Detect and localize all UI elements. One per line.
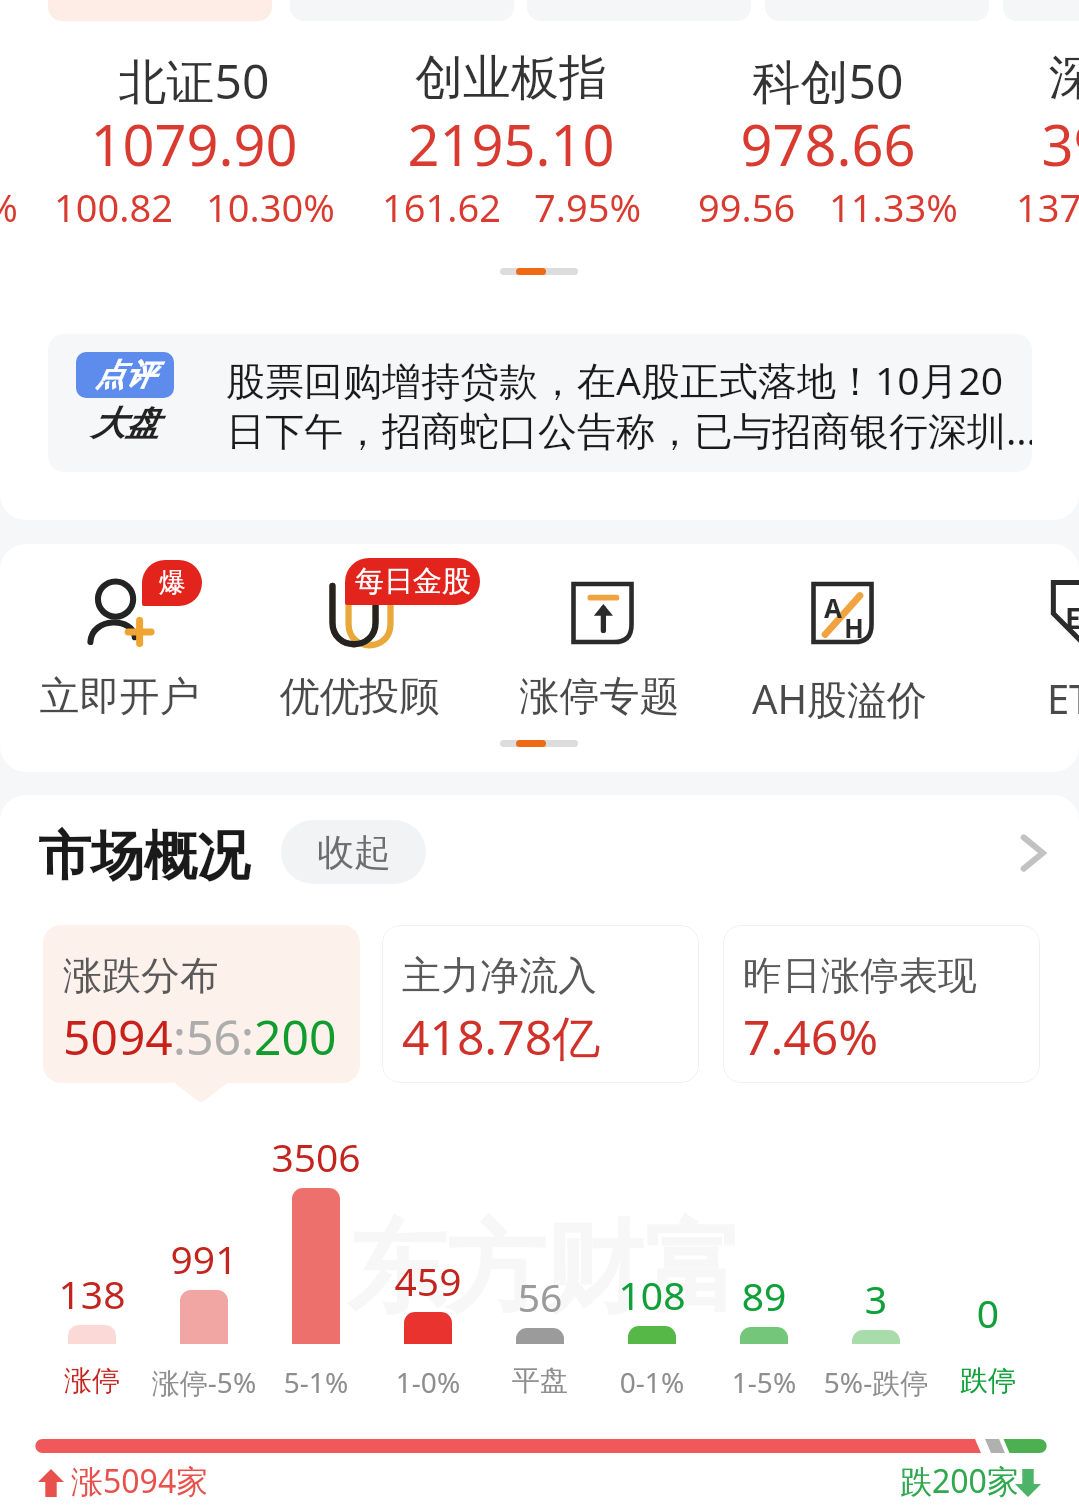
staticText: 56: [186, 1004, 241, 1069]
staticText: 涨停专题: [480, 671, 719, 721]
staticText: :: [173, 1004, 186, 1069]
button[interactable]: 深证成指: [987, 46, 1079, 246]
staticText: 11.33%: [829, 181, 958, 233]
staticText: 5-1%: [256, 1363, 376, 1401]
staticText: 459: [368, 1254, 488, 1307]
button[interactable]: 上证指数: [0, 46, 35, 246]
staticText: 优优投顾: [240, 671, 479, 721]
staticText: 1-5%: [704, 1363, 824, 1401]
staticText: 137.52: [1016, 181, 1079, 233]
staticText: 涨停: [32, 1363, 152, 1398]
staticText: 市场概况: [38, 823, 250, 890]
staticText: 跌200家: [900, 1459, 1019, 1503]
staticText: AH股溢价: [720, 671, 959, 726]
button[interactable]: 主力净流入: [382, 925, 699, 1083]
staticText: 3506: [256, 1130, 376, 1183]
staticText: 创业板指: [353, 48, 669, 108]
staticText: 北证50: [36, 48, 352, 114]
button[interactable]: 涨停专题: [480, 557, 719, 737]
staticText: 56: [480, 1270, 600, 1323]
staticText: A: [824, 590, 842, 625]
staticText: 0: [928, 1286, 1048, 1339]
staticText: 138: [32, 1267, 152, 1320]
staticText: 跌停: [928, 1363, 1048, 1398]
staticText: 7.46%: [743, 1004, 879, 1069]
staticText: 10.30%: [206, 181, 335, 233]
staticText: 1079.90: [36, 106, 352, 182]
staticText: 涨停-5%: [144, 1363, 264, 1401]
staticText: 991: [144, 1232, 264, 1285]
staticText: 东方财富: [347, 1207, 743, 1332]
staticText: ET: [1065, 599, 1079, 637]
staticText: 161.62: [382, 181, 501, 233]
staticText: 股票回购增持贷款，在A股正式落地！10月20 日下午，招商蛇口公告称，已与招商银…: [226, 353, 1032, 456]
staticText: 科创50: [670, 48, 986, 114]
staticText: 978.66: [670, 106, 986, 182]
staticText: 200: [254, 1004, 337, 1069]
staticText: 涨5094家: [71, 1459, 209, 1503]
staticText: ETF: [960, 671, 1079, 725]
staticText: 平盘: [480, 1363, 600, 1398]
button[interactable]: 涨跌分布: [43, 925, 360, 1083]
staticText: 收起: [317, 829, 391, 876]
staticText: 418.78亿: [402, 1004, 601, 1070]
button[interactable]: 每日金股: [240, 557, 479, 737]
button[interactable]: 北证50: [36, 46, 352, 246]
staticText: 5%-跌停: [816, 1363, 936, 1401]
staticText: 3999.99: [987, 106, 1079, 182]
staticText: 10.52%: [0, 181, 18, 233]
staticText: 5094: [63, 1004, 173, 1069]
button[interactable]: 创业板指: [353, 46, 669, 246]
staticText: 涨跌分布: [63, 951, 219, 1000]
button[interactable]: 收起: [281, 820, 426, 884]
button[interactable]: 点评: [48, 334, 1032, 472]
button[interactable]: 昨日涨停表现: [723, 925, 1040, 1083]
staticText: 立即开户: [0, 671, 239, 721]
staticText: 100.82: [54, 181, 173, 233]
button[interactable]: A: [720, 557, 959, 737]
staticText: 0-1%: [592, 1363, 712, 1401]
staticText: 2195.10: [353, 106, 669, 182]
staticText: 大盘: [91, 402, 159, 445]
button[interactable]: 更多: [1008, 825, 1064, 881]
staticText: 深证成指: [987, 48, 1079, 108]
staticText: 108: [592, 1268, 712, 1321]
button[interactable]: 科创50: [670, 46, 986, 246]
staticText: 爆: [159, 566, 186, 600]
staticText: 1-0%: [368, 1363, 488, 1401]
staticText: 每日金股: [355, 563, 471, 600]
staticText: 3: [816, 1272, 936, 1325]
staticText: 昨日涨停表现: [743, 951, 977, 1000]
button[interactable]: 爆: [0, 557, 239, 737]
staticText: :: [241, 1004, 254, 1069]
staticText: H: [844, 610, 864, 645]
staticText: 7.95%: [534, 181, 641, 233]
button[interactable]: ET: [960, 557, 1079, 737]
staticText: 点评: [95, 356, 155, 394]
staticText: 99.56: [698, 181, 796, 233]
staticText: 主力净流入: [402, 951, 597, 1000]
staticText: 89: [704, 1269, 824, 1322]
